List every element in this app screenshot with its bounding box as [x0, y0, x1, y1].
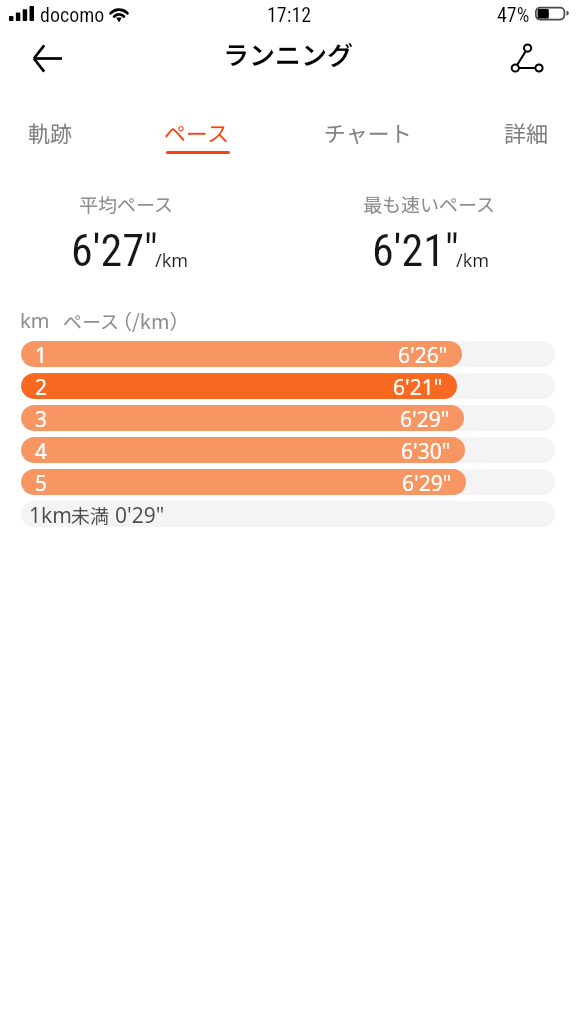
staticText: 1	[35, 341, 48, 367]
staticText: /km	[155, 248, 189, 273]
button[interactable]: Share	[503, 34, 552, 83]
button[interactable]: Back	[23, 34, 72, 83]
staticText: docomo	[40, 3, 105, 26]
staticText: 2	[35, 373, 48, 399]
button[interactable]: 1	[21, 341, 555, 367]
staticText: 最も速いペース	[363, 190, 496, 218]
button[interactable]: 4	[21, 437, 555, 463]
button[interactable]: 詳細	[490, 112, 563, 158]
staticText: 6'21"	[393, 373, 443, 399]
staticText: /km	[456, 248, 490, 273]
button[interactable]: 軌跡	[15, 112, 86, 158]
button[interactable]: チャート	[312, 112, 423, 158]
button[interactable]: 1	[21, 501, 555, 527]
staticText: 6'29"	[402, 469, 452, 495]
staticText: 6'21"	[372, 225, 459, 277]
staticText: 47%	[497, 3, 530, 26]
staticText: 17:12	[267, 3, 312, 26]
staticText: km	[20, 307, 50, 334]
staticText: 3	[35, 405, 48, 431]
staticText: 平均ペース	[79, 190, 174, 218]
staticText: 0'29"	[115, 501, 165, 527]
staticText: 未満	[71, 501, 110, 527]
staticText: ペース	[63, 307, 120, 335]
button[interactable]: ペース	[150, 112, 242, 158]
button[interactable]: 5	[21, 469, 555, 495]
staticText: 6'29"	[400, 405, 450, 431]
staticText: ペース	[164, 116, 229, 148]
staticText: 6'27"	[71, 225, 158, 277]
staticText: 6'30"	[401, 437, 451, 463]
staticText: ランニング	[223, 35, 354, 73]
staticText: km	[41, 501, 72, 527]
button[interactable]: 2	[21, 373, 555, 399]
staticText: チャート	[324, 116, 412, 148]
staticText: 1	[29, 501, 42, 527]
staticText: 4	[35, 437, 48, 463]
staticText: 5	[35, 469, 48, 495]
staticText: （/km）	[112, 306, 190, 335]
button[interactable]: 3	[21, 405, 555, 431]
staticText: 詳細	[504, 116, 549, 148]
staticText: 6'26"	[398, 341, 448, 367]
staticText: 軌跡	[28, 116, 73, 148]
